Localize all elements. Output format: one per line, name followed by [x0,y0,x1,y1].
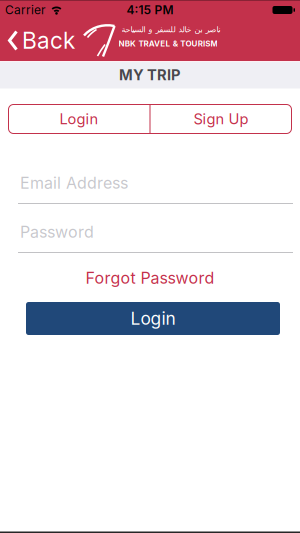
staticText: Sign Up [193,110,248,128]
staticText: Password [20,223,94,241]
staticText: Carrier [5,3,46,17]
staticText: MY TRIP [119,66,181,84]
staticText: ناصر بن خالد للسفر و السياحة [121,25,220,34]
staticText: NBK TRAVEL & TOURISM [119,39,217,48]
staticText: Forgot Password [85,269,214,287]
staticText: Login [59,110,98,128]
staticText: Login [130,308,175,329]
staticText: Email Address [20,174,128,192]
staticText: 4:15 PM [126,3,173,17]
staticText: Back [22,27,75,54]
